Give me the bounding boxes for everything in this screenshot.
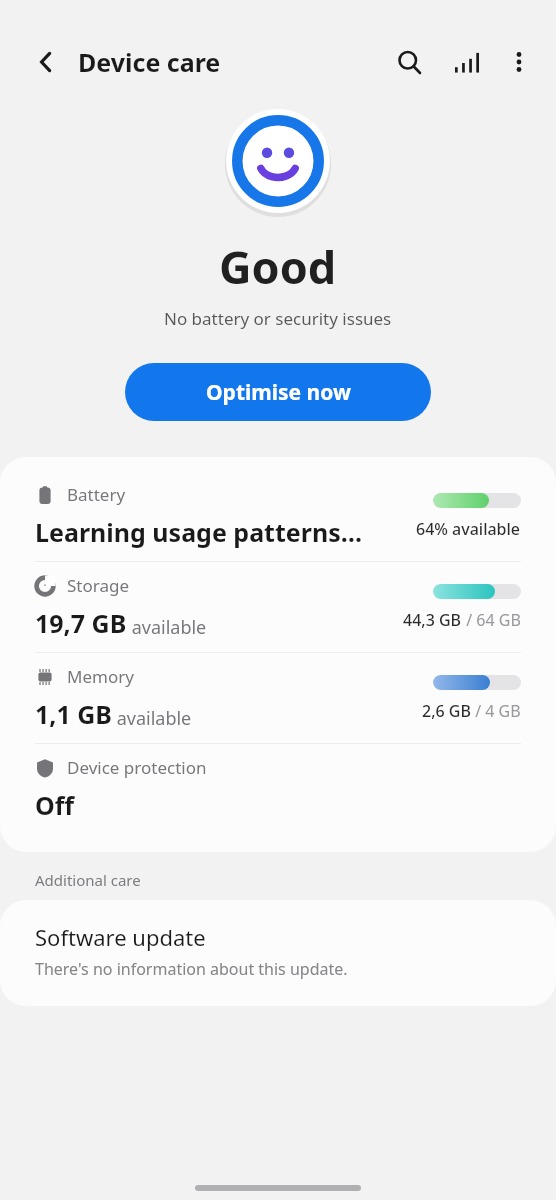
staticText: Learning usage patterns…: [35, 515, 363, 549]
button[interactable]: Device protection: [0, 744, 556, 834]
staticText: / 4 GB: [471, 700, 521, 722]
staticText: available: [127, 615, 207, 640]
staticText: available: [112, 706, 192, 731]
staticText: Storage: [67, 574, 130, 597]
staticText: Additional care: [35, 870, 141, 890]
staticText: Off: [35, 788, 75, 822]
button[interactable]: Search: [386, 39, 432, 85]
button[interactable]: More options: [496, 39, 542, 85]
button[interactable]: Optimise now: [125, 363, 431, 421]
button[interactable]: Memory: [0, 653, 556, 743]
staticText: 44,3 GB: [403, 609, 462, 631]
staticText: 2,6 GB: [422, 700, 471, 722]
staticText: Memory: [67, 665, 134, 688]
staticText: Software update: [35, 922, 206, 952]
staticText: / 64 GB: [462, 609, 521, 631]
staticText: There's no information about this update…: [35, 958, 348, 980]
staticText: Device care: [78, 45, 221, 79]
staticText: 64% available: [416, 518, 521, 540]
button[interactable]: Back: [22, 38, 70, 86]
button[interactable]: Battery: [0, 471, 556, 561]
staticText: Optimise now: [206, 378, 351, 407]
staticText: No battery or security issues: [164, 307, 392, 330]
button[interactable]: Usage statistics: [444, 39, 490, 85]
staticText: 1,1 GB: [35, 697, 112, 731]
staticText: Good: [219, 236, 337, 297]
staticText: 19,7 GB: [35, 606, 127, 640]
staticText: Device protection: [67, 756, 207, 779]
button[interactable]: Storage: [0, 562, 556, 652]
button[interactable]: Software update: [0, 900, 556, 1006]
staticText: Battery: [67, 483, 126, 506]
